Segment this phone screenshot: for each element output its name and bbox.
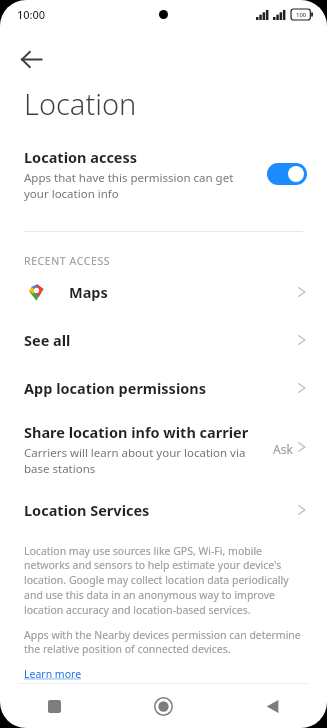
staticText: Share location info with carrier [24, 422, 249, 442]
button[interactable]: Location Services [0, 486, 327, 534]
staticText: RECENT ACCESS [24, 254, 111, 268]
button[interactable]: Back [218, 684, 327, 728]
button[interactable]: See all [0, 316, 327, 364]
button[interactable]: Share location info with carrier [0, 412, 327, 486]
button[interactable]: Recents [0, 684, 109, 728]
button[interactable]: Back [10, 38, 52, 80]
button[interactable]: Maps [0, 268, 327, 316]
staticText: Apps with the Nearby devices permission … [24, 628, 307, 656]
staticText: 100 [296, 11, 307, 19]
button[interactable]: Learn more [24, 667, 82, 681]
staticText: Location access [24, 147, 138, 167]
staticText: App location permissions [24, 378, 297, 398]
staticText: Ask [273, 441, 293, 457]
staticText: 10:00 [17, 7, 46, 22]
button[interactable]: Location access [0, 143, 327, 205]
button[interactable]: Location access toggle [267, 163, 307, 185]
staticText: Location Services [24, 500, 297, 520]
button[interactable]: App location permissions [0, 364, 327, 412]
staticText: Maps [69, 282, 297, 302]
staticText: See all [24, 330, 297, 350]
staticText: Carriers will learn about your location … [24, 445, 267, 476]
staticText: Location may use sources like GPS, Wi-Fi… [24, 544, 307, 617]
staticText: Learn more [24, 667, 82, 681]
staticText: Location [24, 84, 137, 123]
button[interactable]: Home [109, 684, 218, 728]
staticText: Apps that have this permission can get y… [24, 170, 257, 201]
